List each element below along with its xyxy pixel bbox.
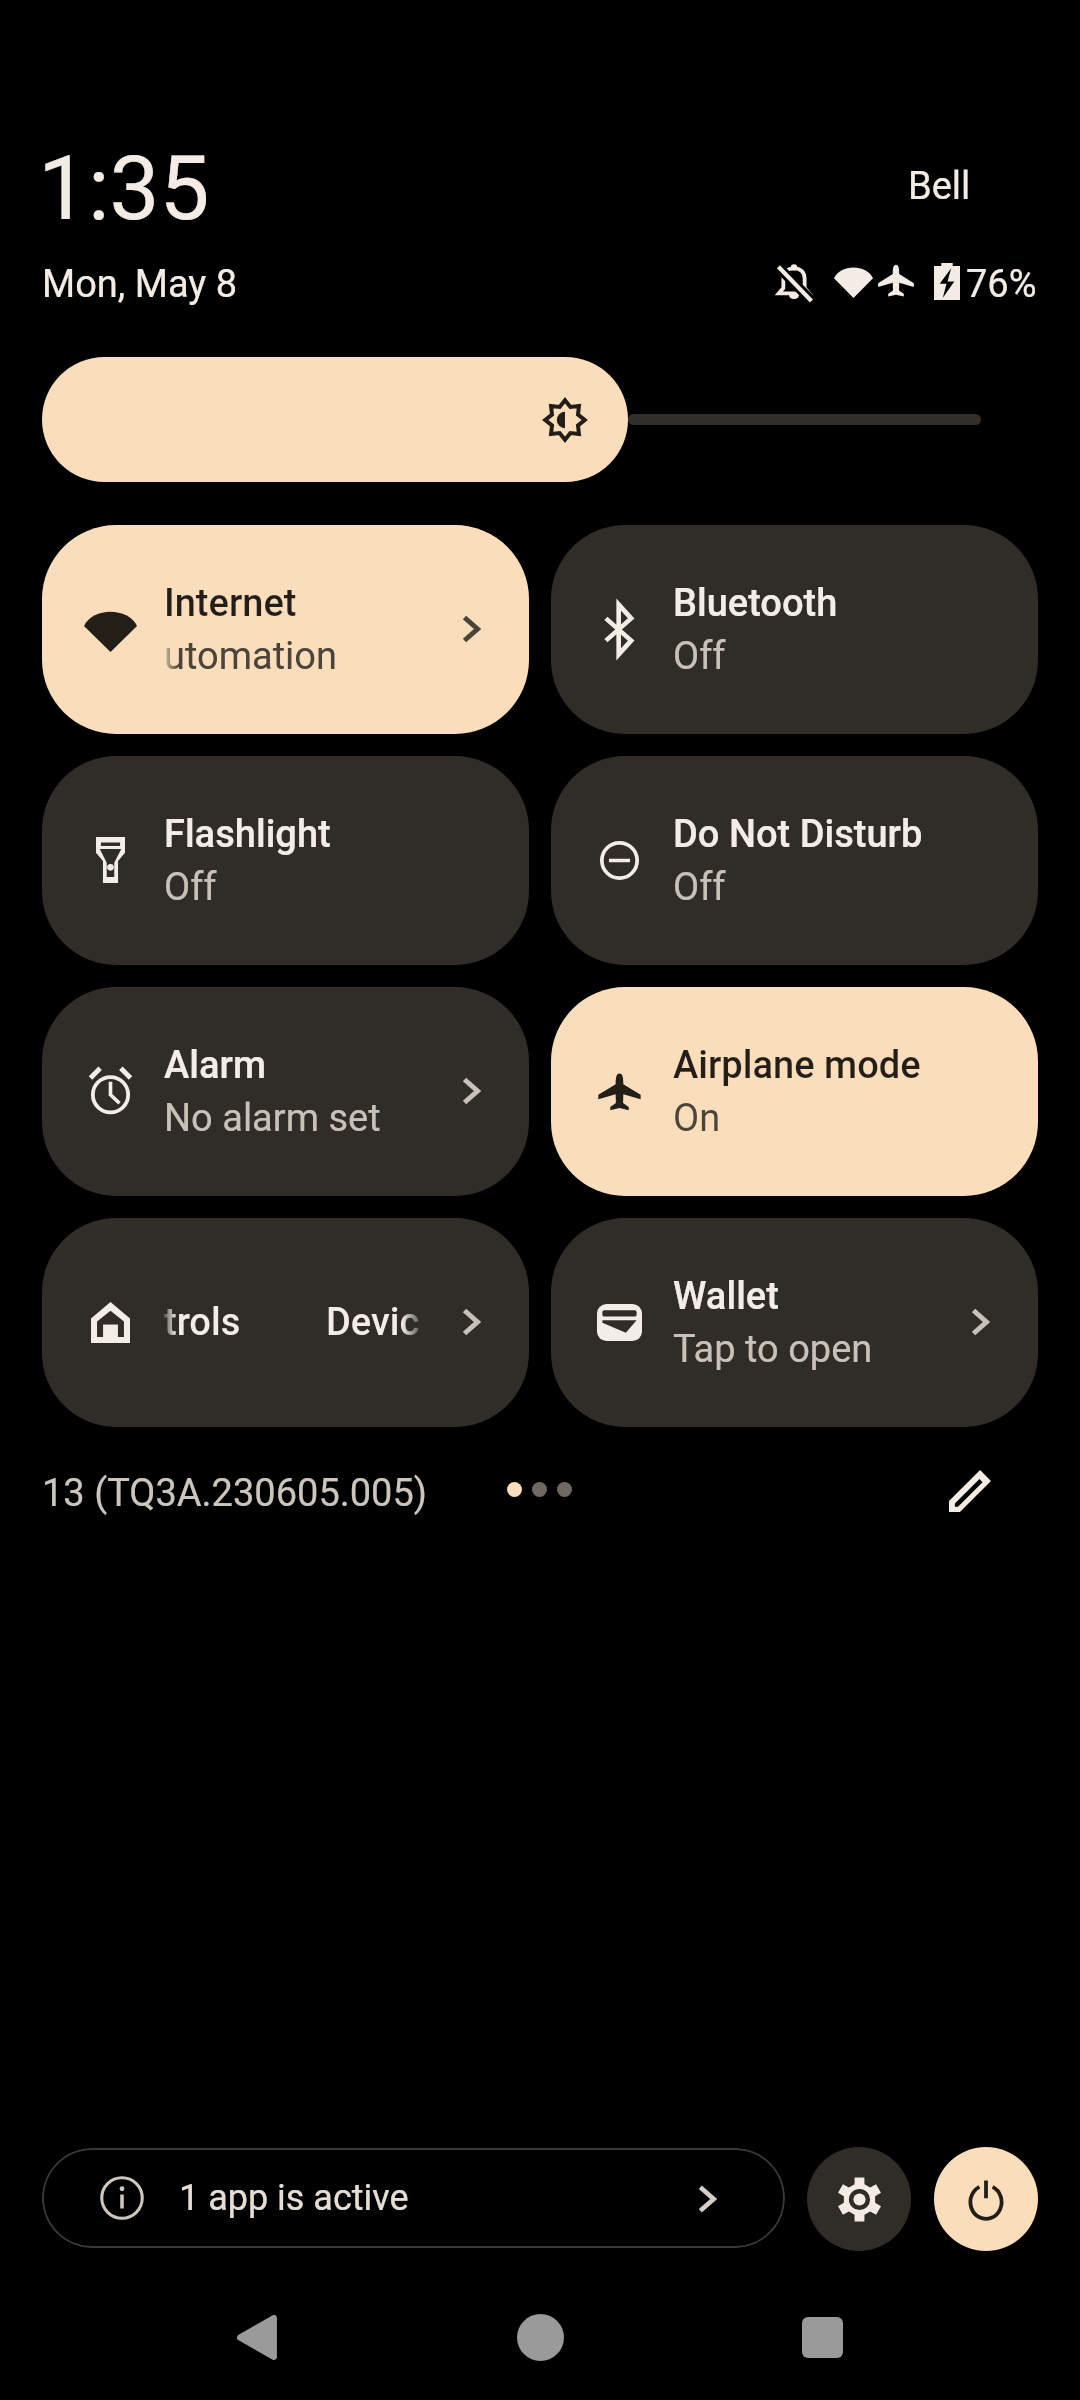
- button[interactable]: Home: [480, 2277, 600, 2397]
- staticText: Mon, May 8: [42, 262, 238, 307]
- button[interactable]: Power: [934, 2147, 1038, 2251]
- staticText: Bluetooth: [673, 581, 838, 626]
- staticText: Device: [326, 1300, 421, 1345]
- button[interactable]: Back: [197, 2277, 317, 2397]
- staticText: utomation: [164, 634, 338, 679]
- staticText: Flashlight: [164, 812, 331, 857]
- staticText: Bell: [908, 164, 971, 209]
- staticText: On: [673, 1096, 721, 1141]
- button[interactable]: Flashlight: [42, 756, 529, 965]
- staticText: Tap to open: [673, 1327, 873, 1372]
- staticText: trols: [164, 1300, 241, 1345]
- staticText: Internet: [164, 581, 297, 626]
- staticText: No alarm set: [164, 1096, 381, 1141]
- staticText: Off: [673, 865, 726, 910]
- button[interactable]: Alarm: [42, 987, 529, 1196]
- staticText: Do Not Disturb: [673, 812, 923, 857]
- button[interactable]: 1 app is active: [42, 2148, 785, 2248]
- staticText: Wallet: [673, 1274, 779, 1319]
- button[interactable]: Airplane mode: [551, 987, 1038, 1196]
- button[interactable]: Edit tiles: [928, 1449, 1012, 1533]
- button[interactable]: trols: [42, 1218, 529, 1427]
- button[interactable]: Bluetooth: [551, 525, 1038, 734]
- staticText: Alarm: [164, 1043, 267, 1088]
- button[interactable]: Settings: [807, 2147, 911, 2251]
- button[interactable]: Internet: [42, 525, 529, 734]
- button[interactable]: Do Not Disturb: [551, 756, 1038, 965]
- staticText: 1 app is active: [179, 2177, 409, 2219]
- staticText: Off: [164, 865, 217, 910]
- staticText: 13 (TQ3A.230605.005): [42, 1471, 428, 1516]
- staticText: Off: [673, 634, 726, 679]
- staticText: 1:35: [38, 136, 210, 240]
- button[interactable]: Wallet: [551, 1218, 1038, 1427]
- staticText: Airplane mode: [673, 1043, 921, 1088]
- button[interactable]: Brightness: [42, 357, 1038, 482]
- button[interactable]: Recents: [762, 2277, 882, 2397]
- staticText: 76%: [966, 262, 1037, 307]
